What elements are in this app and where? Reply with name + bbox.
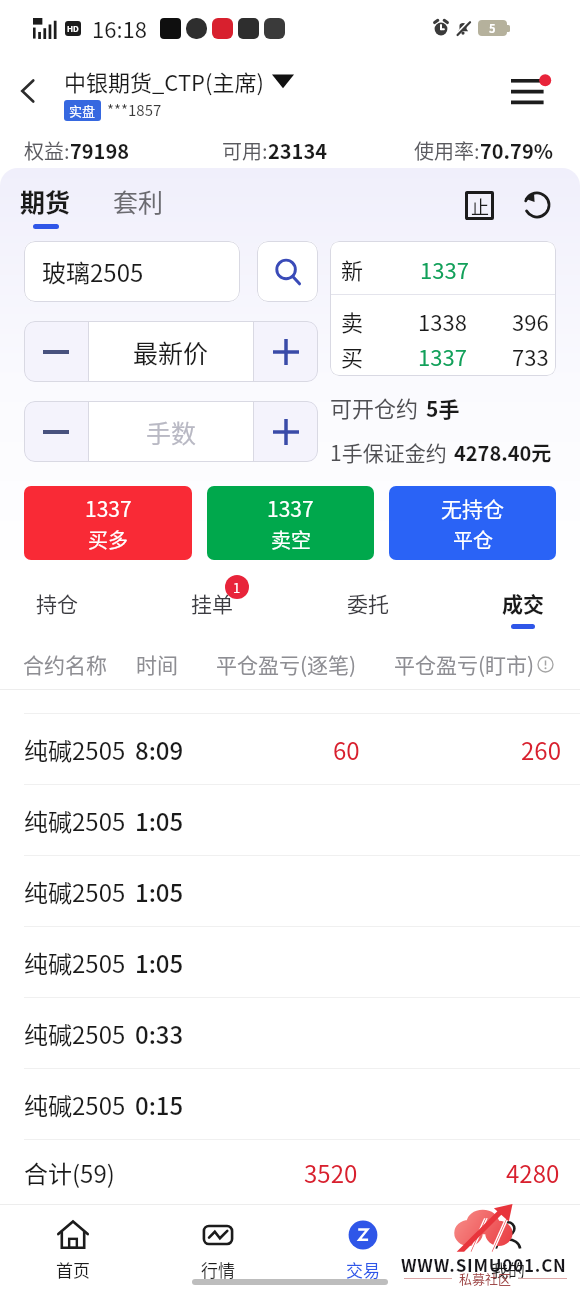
staticText: ***1857 [107, 99, 162, 121]
staticText: 合约名称 [23, 649, 107, 679]
staticText: 1:05 [135, 945, 184, 980]
button[interactable]: 无持仓 [389, 486, 556, 560]
staticText: 我的 [491, 1257, 525, 1282]
staticText: 最新价 [133, 334, 209, 370]
button[interactable]: 纯碱2505 [0, 714, 580, 785]
staticText: 玻璃2505 [42, 254, 144, 289]
staticText: 新 [341, 253, 364, 285]
button[interactable]: Refresh [516, 184, 558, 226]
staticText: 1337 [420, 253, 469, 285]
staticText: 中银期货_CTP(主席) [64, 65, 264, 97]
button[interactable]: 行情 [145, 1205, 290, 1289]
button[interactable]: Decrease [24, 401, 88, 462]
staticText: 止 [471, 193, 489, 219]
staticText: 使用率: [414, 136, 480, 165]
button[interactable]: 1337 [207, 486, 374, 560]
staticText: 私募社区 [459, 1269, 512, 1288]
staticText: 1338 [418, 305, 467, 337]
button[interactable]: 纯碱2505 [0, 927, 580, 998]
staticText: 1手保证金约 [330, 437, 447, 467]
staticText: 可开仓约 [330, 391, 419, 423]
staticText: 持仓 [36, 588, 78, 618]
staticText: 1 [233, 578, 241, 597]
button[interactable]: 首页 [0, 1205, 145, 1289]
button[interactable]: 最新价 [89, 321, 253, 382]
staticText: 平仓 [453, 525, 493, 554]
staticText: 手数 [146, 414, 197, 450]
button[interactable]: 手数 [89, 401, 253, 462]
staticText: 可用: [222, 136, 268, 165]
staticText: 396 [512, 305, 549, 337]
button[interactable]: 挂单 [164, 580, 260, 637]
staticText: 0:33 [135, 1016, 184, 1051]
staticText: 8:09 [135, 732, 184, 767]
staticText: 合计(59) [24, 1155, 115, 1190]
button[interactable]: 成交 [475, 580, 571, 637]
staticText: 首页 [56, 1257, 90, 1282]
button[interactable]: 纯碱2505 [0, 998, 580, 1069]
staticText: 0:15 [135, 1087, 184, 1122]
button[interactable]: Increase [254, 321, 318, 382]
staticText: 无持仓 [441, 493, 504, 523]
button[interactable]: Increase [254, 401, 318, 462]
staticText: 60 [333, 732, 360, 767]
staticText: 权益: [24, 136, 70, 165]
button[interactable]: 1337 [24, 486, 192, 560]
staticText: 260 [521, 732, 561, 767]
staticText: 纯碱2505 [24, 1087, 126, 1122]
staticText: 纯碱2505 [24, 803, 126, 838]
staticText: 70.79% [480, 136, 553, 165]
button[interactable]: 持仓 [9, 580, 105, 637]
button[interactable]: 玻璃2505 [24, 241, 240, 302]
staticText: 纯碱2505 [24, 945, 126, 980]
staticText: WWW.SIMU001.CN [401, 1252, 567, 1277]
staticText: 行情 [201, 1257, 235, 1282]
button[interactable]: 纯碱2505 [0, 856, 580, 927]
staticText: 16:18 [92, 12, 147, 44]
staticText: 平仓盈亏(逐笔) [216, 649, 357, 679]
staticText: 1:05 [135, 803, 184, 838]
button[interactable]: 我的 [435, 1205, 580, 1289]
staticText: 平仓盈亏(盯市) [394, 649, 535, 679]
staticText: 4278.40元 [454, 438, 552, 467]
staticText: 1337 [85, 493, 132, 523]
staticText: 套利 [113, 183, 164, 219]
button[interactable]: 纯碱2505 [0, 1069, 580, 1140]
staticText: 买多 [88, 525, 128, 554]
staticText: 挂单 [191, 588, 233, 618]
staticText: 1:05 [135, 874, 184, 909]
button[interactable]: Search [257, 241, 318, 302]
staticText: 纯碱2505 [24, 874, 126, 909]
staticText: 时间 [136, 649, 178, 679]
button[interactable]: 交易 [290, 1205, 435, 1289]
staticText: 委托 [347, 588, 389, 618]
button[interactable]: Stop order [458, 184, 500, 226]
staticText: 交易 [346, 1257, 380, 1282]
staticText: 买 [341, 340, 364, 372]
staticText: 3520 [304, 1155, 358, 1190]
staticText: 卖空 [271, 525, 311, 554]
staticText: 成交 [502, 588, 544, 618]
staticText: 5手 [426, 393, 460, 423]
staticText: HD [67, 23, 79, 35]
staticText: 5 [489, 20, 496, 36]
staticText: 23134 [268, 136, 327, 165]
button[interactable]: Back [0, 63, 56, 119]
button[interactable]: Decrease [24, 321, 88, 382]
button[interactable]: 委托 [320, 580, 416, 637]
staticText: 期货 [20, 183, 71, 219]
button[interactable]: 期货 [20, 183, 71, 229]
button[interactable]: Menu [504, 65, 556, 117]
staticText: 1337 [418, 340, 467, 372]
button[interactable]: 纯碱2505 [0, 785, 580, 856]
staticText: 纯碱2505 [24, 1016, 126, 1051]
button[interactable]: 套利 [113, 183, 164, 229]
staticText: 纯碱2505 [24, 732, 126, 767]
staticText: 733 [512, 340, 549, 372]
staticText: 实盘 [69, 101, 96, 120]
staticText: 卖 [341, 305, 364, 337]
staticText: 4280 [506, 1155, 560, 1190]
staticText: 1337 [267, 493, 314, 523]
staticText: 79198 [70, 136, 129, 165]
